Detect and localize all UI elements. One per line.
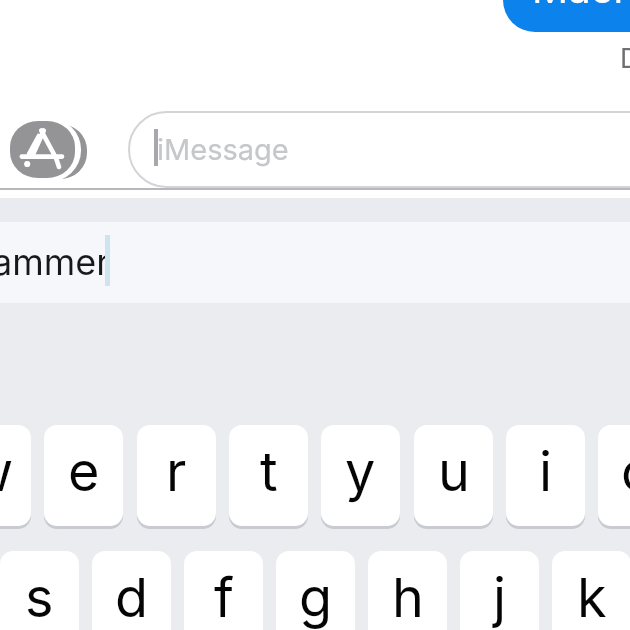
staticText: D [620,42,630,75]
staticText: e [68,439,100,504]
button[interactable]: w [0,425,31,526]
staticText: r [166,439,187,504]
button[interactable]: t [229,425,308,526]
button[interactable]: h [368,551,447,630]
button[interactable]: k [552,551,630,630]
button[interactable]: e [44,425,123,526]
button[interactable]: f [184,551,263,630]
staticText: iMessage [157,132,289,167]
button[interactable] [128,111,630,188]
button[interactable]: y [321,425,400,526]
button[interactable]: u [414,425,493,526]
staticText: y [345,439,376,504]
staticText: h [392,565,424,630]
staticText: u [438,439,470,504]
staticText: w [0,439,14,504]
button[interactable]: App Store [4,112,96,186]
staticText: t [260,439,278,504]
staticText: Mach k [532,0,630,12]
button[interactable]: ammer [0,224,112,302]
button[interactable]: o [598,425,630,526]
staticText: k [577,565,607,630]
button[interactable]: d [92,551,171,630]
staticText: ammer [0,240,110,284]
button[interactable]: g [276,551,355,630]
staticText: d [115,565,149,630]
button[interactable]: j [460,551,539,630]
staticText: s [25,565,54,630]
staticText: o [621,439,630,504]
staticText: g [299,565,333,630]
button[interactable]: i [506,425,585,526]
staticText: f [214,565,234,630]
button[interactable]: s [0,551,79,630]
button[interactable]: Mach k [503,0,630,32]
button[interactable]: r [137,425,216,526]
staticText: j [493,565,507,630]
staticText: i [539,439,553,504]
